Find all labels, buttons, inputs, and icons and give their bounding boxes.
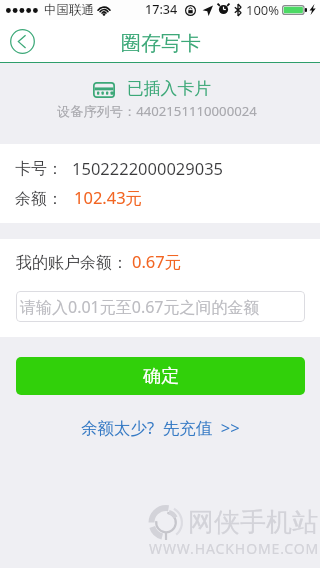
- staticText: 网侠手机站: [188, 506, 318, 539]
- staticText: 1502222000029035: [72, 157, 224, 179]
- staticText: 确定: [143, 365, 179, 388]
- staticText: 已插入卡片: [127, 78, 211, 99]
- staticText: 设备序列号：4402151110000024: [57, 102, 257, 120]
- button[interactable]: 请输入0.01元至0.67元之间的金额: [16, 291, 305, 322]
- staticText: WWW.HACKHOME.COM: [149, 539, 320, 558]
- button[interactable]: Back: [8, 27, 37, 56]
- staticText: 102.43元: [74, 186, 143, 209]
- button[interactable]: 余额太少? 先充值 >>: [81, 416, 240, 439]
- staticText: 我的账户余额：: [16, 253, 128, 273]
- staticText: 0.67元: [132, 250, 182, 273]
- staticText: 余额：: [15, 189, 63, 209]
- staticText: 圈存写卡: [121, 31, 201, 56]
- staticText: 卡号：: [15, 159, 63, 179]
- staticText: 请输入0.01元至0.67元之间的金额: [20, 296, 260, 318]
- staticText: 17:34: [145, 1, 178, 18]
- staticText: 100%: [246, 1, 280, 19]
- staticText: 中国联通: [44, 2, 94, 18]
- button[interactable]: 确定: [16, 357, 305, 395]
